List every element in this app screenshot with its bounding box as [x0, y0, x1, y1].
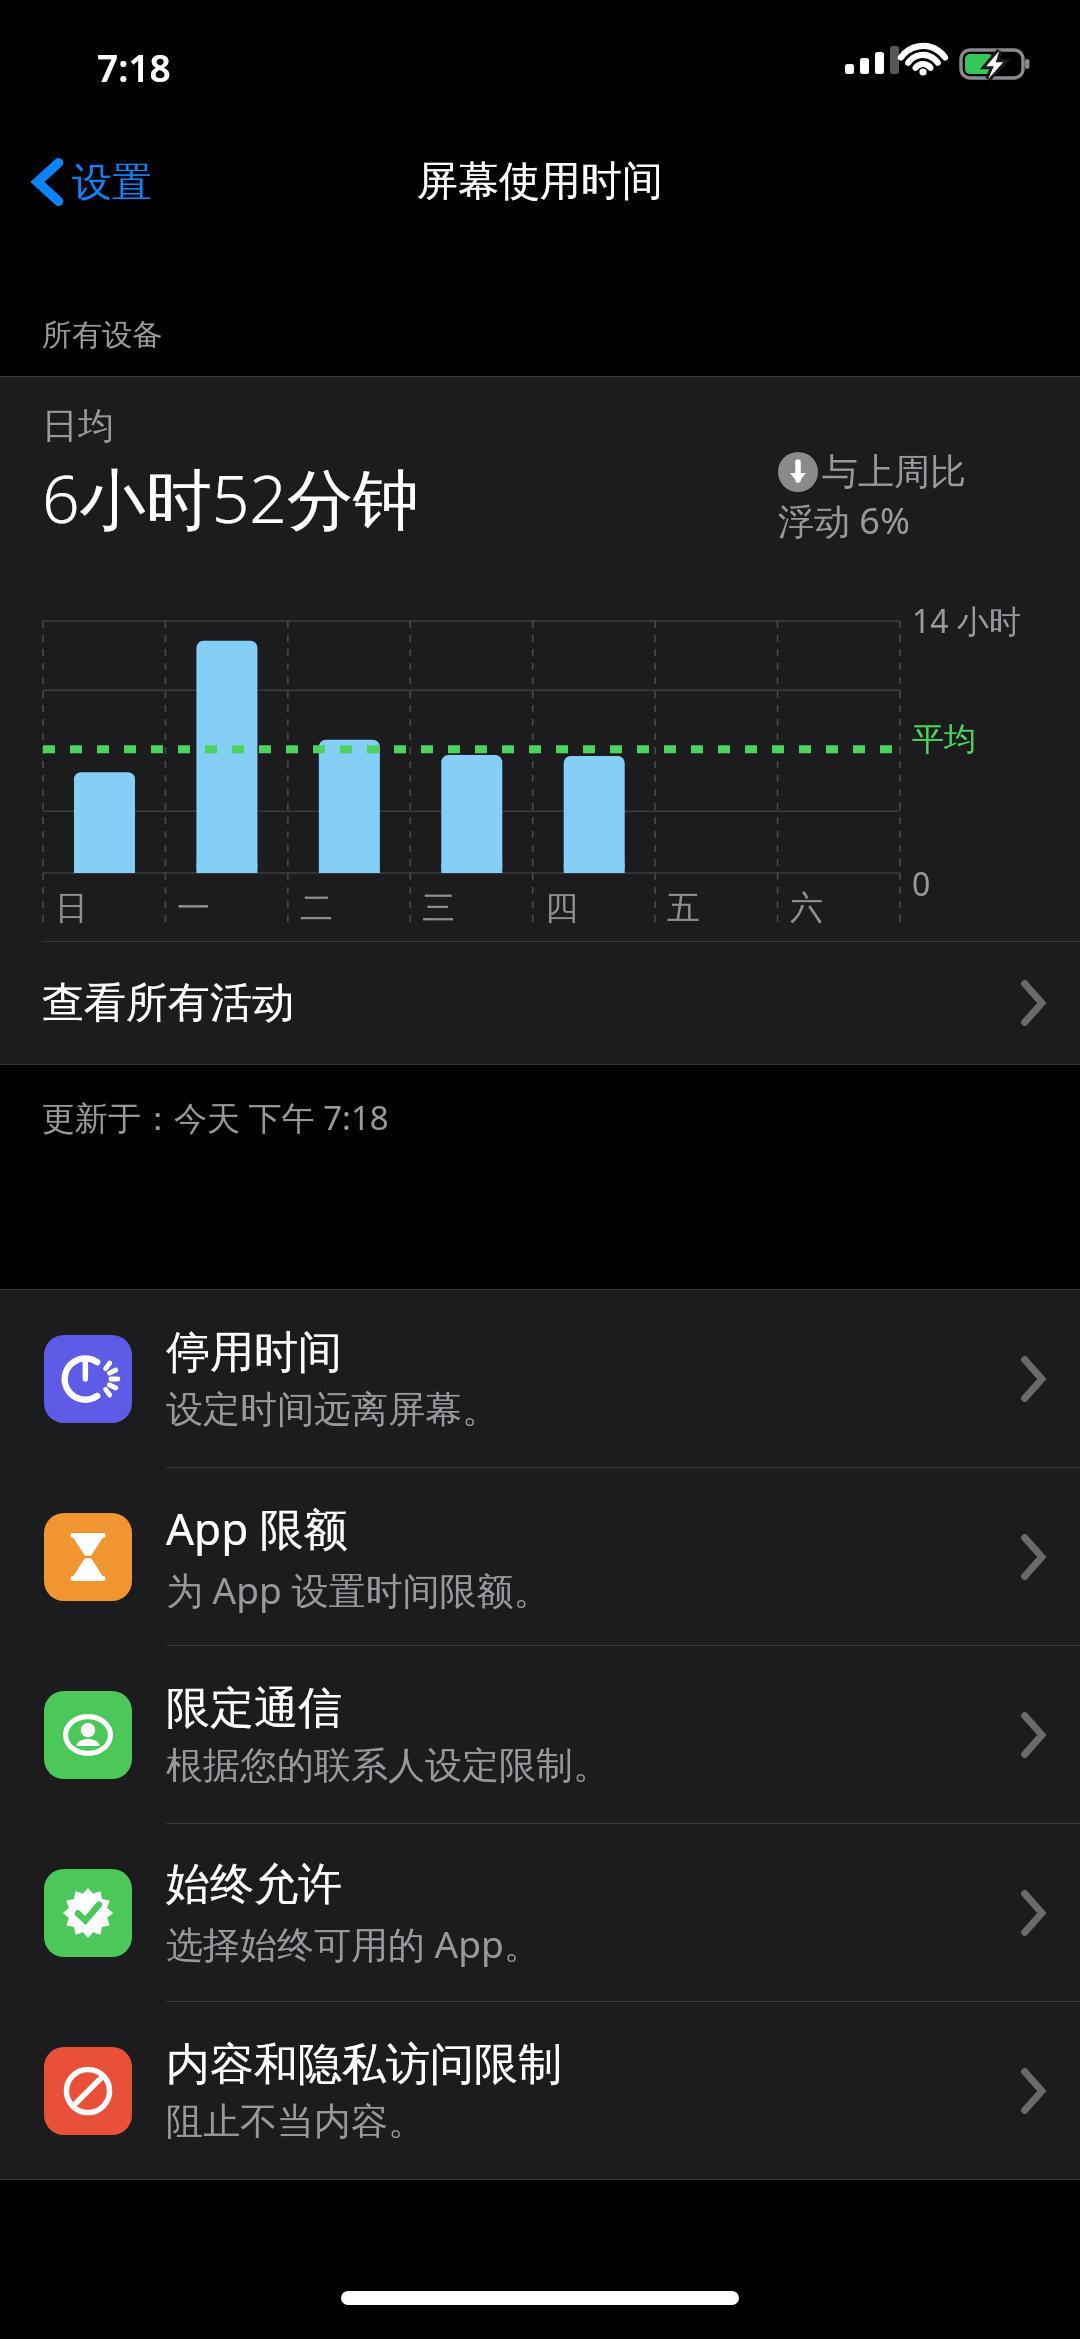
staticText: 三 — [422, 887, 455, 929]
staticText: 一 — [177, 887, 210, 929]
staticText: 始终允许 — [166, 1857, 342, 1912]
staticText: 查看所有活动 — [42, 977, 294, 1030]
button[interactable]: 始终允许 — [0, 1824, 1080, 2001]
staticText: 更新于：今天 下午 7:18 — [42, 1095, 389, 1140]
staticText: 根据您的联系人设定限制。 — [166, 1742, 610, 1789]
staticText: 选择始终可用的 App。 — [166, 1918, 541, 1969]
button[interactable]: App 限额 — [0, 1468, 1080, 1645]
staticText: 二 — [300, 887, 333, 929]
button[interactable]: 设置 — [20, 146, 164, 218]
staticText: 阻止不当内容。 — [166, 2098, 425, 2145]
staticText: 设定时间远离屏幕。 — [166, 1386, 499, 1433]
staticText: 与上周比 — [822, 449, 966, 494]
staticText: 五 — [667, 887, 700, 929]
staticText: 0 — [912, 862, 931, 906]
staticText: 7:18 — [97, 42, 171, 92]
staticText: 六 — [790, 887, 823, 929]
staticText: 四 — [545, 887, 578, 929]
button[interactable]: 内容和隐私访问限制 — [0, 2002, 1080, 2179]
staticText: 日 — [55, 887, 88, 929]
staticText: 停用时间 — [166, 1325, 342, 1380]
staticText: 限定通信 — [166, 1681, 342, 1736]
button[interactable]: 限定通信 — [0, 1646, 1080, 1823]
staticText: 所有设备 — [42, 316, 162, 354]
button[interactable]: 停用时间 — [0, 1290, 1080, 1467]
button[interactable]: 查看所有活动 — [0, 942, 1080, 1064]
staticText: 浮动 6% — [778, 496, 910, 545]
staticText: 6小时52分钟 — [42, 452, 420, 542]
staticText: 为 App 设置时间限额。 — [166, 1564, 551, 1615]
staticText: 日均 — [42, 403, 114, 448]
staticText: 14 小时 — [912, 599, 1021, 643]
staticText: 设置 — [72, 157, 152, 207]
staticText: 平均 — [912, 719, 976, 759]
staticText: App 限额 — [166, 1498, 348, 1558]
staticText: 屏幕使用时间 — [417, 156, 663, 208]
staticText: 内容和隐私访问限制 — [166, 2037, 562, 2092]
